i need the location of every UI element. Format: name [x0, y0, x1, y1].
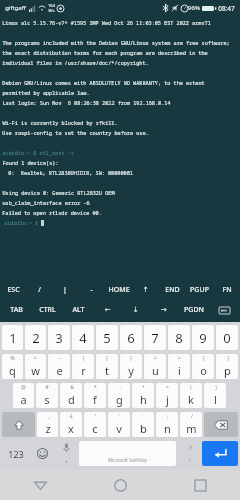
button[interactable]: Shift: [2, 412, 35, 437]
button[interactable]: TAB: [0, 300, 32, 320]
button[interactable]: |: [52, 280, 78, 300]
button[interactable]: &: [60, 383, 82, 408]
button[interactable]: ALT: [63, 300, 94, 320]
button[interactable]: Backspace: [204, 412, 238, 437]
button[interactable]: 5: [96, 325, 118, 350]
staticText: .: [188, 452, 191, 463]
button[interactable]: ^: [25, 354, 46, 379]
button[interactable]: |: [72, 354, 94, 379]
button[interactable]: FN: [213, 280, 240, 300]
staticText: Debian GNU/Linux comes with ABSOLUTELY N…: [2, 79, 205, 86]
button[interactable]: Emoji: [32, 441, 53, 466]
staticText: giftgaff: [5, 4, 26, 12]
staticText: =: [166, 384, 169, 391]
button[interactable]: }: [120, 354, 142, 379]
button[interactable]: -: [108, 383, 130, 408]
button[interactable]: ;: [156, 412, 178, 437]
button[interactable]: ↑: [132, 280, 159, 300]
button[interactable]: *: [84, 383, 106, 408]
button[interactable]: %: [2, 354, 23, 379]
staticText: ↑: [143, 286, 149, 294]
staticText: 164: [48, 3, 55, 8]
button[interactable]: :: [132, 412, 154, 437]
button[interactable]: _: [37, 412, 58, 437]
button[interactable]: 0: [216, 325, 238, 350]
staticText: ^: [34, 355, 37, 362]
button[interactable]: HOME: [105, 280, 132, 300]
staticText: :: [143, 413, 145, 420]
button[interactable]: @: [13, 383, 34, 408]
button[interactable]: Voice input: [55, 441, 77, 466]
button[interactable]: END: [159, 280, 186, 300]
button[interactable]: /: [26, 280, 52, 300]
button[interactable]: 8: [168, 325, 190, 350]
button[interactable]: →: [150, 300, 178, 320]
staticText: CTRL: [39, 305, 56, 315]
button[interactable]: /: [180, 412, 202, 437]
button[interactable]: ): [216, 354, 238, 379]
staticText: s: [44, 392, 50, 407]
button[interactable]: #: [36, 383, 58, 408]
staticText: PGDN: [184, 305, 204, 315]
button[interactable]: 2: [25, 325, 46, 350]
button[interactable]: 3: [48, 325, 70, 350]
button[interactable]: 123: [2, 441, 30, 466]
button[interactable]: ~: [48, 354, 70, 379]
staticText: TAB: [10, 305, 23, 315]
button[interactable]: ESC: [0, 280, 26, 300]
button[interactable]: =: [156, 383, 178, 408]
button[interactable]: 9: [192, 325, 214, 350]
staticText: z: [45, 421, 51, 436]
staticText: r: [81, 363, 86, 378]
staticText: 3: [55, 329, 63, 347]
button[interactable]: +: [132, 383, 154, 408]
button[interactable]: Back: [0, 470, 80, 500]
button[interactable]: ): [204, 383, 226, 408]
staticText: a: [20, 392, 27, 407]
staticText: aidsdio:~ $: [2, 219, 40, 226]
button[interactable]: £: [60, 412, 82, 437]
staticText: the exact distribution terms for each pr…: [2, 49, 208, 56]
staticText: j: [166, 392, 169, 407]
staticText: .?: [187, 444, 192, 452]
button[interactable]: (: [180, 383, 202, 408]
staticText: 0: Realtek, RTL2838UHIDIR, SN: 00000001: [2, 169, 133, 176]
staticText: i: [178, 363, 181, 378]
staticText: %: [10, 355, 15, 362]
staticText: c: [92, 421, 98, 436]
button[interactable]: Enter: [202, 441, 238, 466]
staticText: +: [142, 384, 145, 391]
staticText: 9: [199, 329, 207, 347]
button[interactable]: CTRL: [32, 300, 63, 320]
staticText: Use raspi-config to set the country befo…: [2, 129, 149, 136]
button[interactable]: PGUP: [186, 280, 213, 300]
button[interactable]: Hide keyboard: [209, 300, 240, 320]
button[interactable]: <: [144, 354, 166, 379]
staticText: f: [93, 392, 97, 407]
button[interactable]: ': [108, 412, 130, 437]
button[interactable]: Space: [79, 441, 176, 466]
button[interactable]: PGDN: [178, 300, 209, 320]
button[interactable]: ↓: [122, 300, 150, 320]
staticText: -: [90, 285, 93, 295]
button[interactable]: 7: [144, 325, 166, 350]
staticText: _: [47, 413, 50, 420]
staticText: 5: [103, 329, 111, 347]
staticText: g: [116, 392, 123, 407]
button[interactable]: 4: [72, 325, 94, 350]
staticText: PGUP: [190, 285, 209, 295]
button[interactable]: ": [84, 412, 106, 437]
button[interactable]: ←: [94, 300, 122, 320]
button[interactable]: 1: [2, 325, 23, 350]
staticText: Microsoft SwiftKey: [108, 457, 147, 463]
button[interactable]: .?: [178, 441, 200, 466]
staticText: ,: [65, 453, 68, 464]
button[interactable]: -: [78, 280, 105, 300]
button[interactable]: (: [192, 354, 214, 379]
button[interactable]: 6: [120, 325, 142, 350]
staticText: →: [161, 306, 167, 314]
button[interactable]: >: [168, 354, 190, 379]
button[interactable]: {: [96, 354, 118, 379]
button[interactable]: Home: [80, 470, 160, 500]
button[interactable]: Recent apps: [160, 470, 240, 500]
